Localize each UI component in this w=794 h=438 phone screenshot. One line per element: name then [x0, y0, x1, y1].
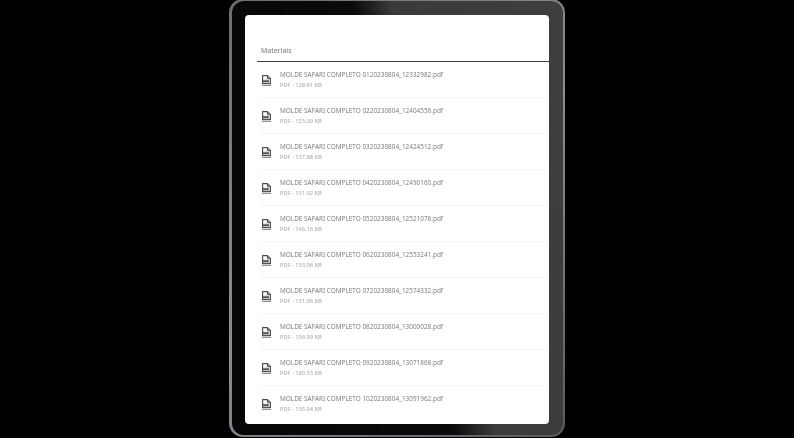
staticText: MOLDE SAFARI COMPLETO 0120230804_1233298… [280, 70, 444, 79]
staticText: MOLDE SAFARI COMPLETO 0920230804_1307186… [280, 358, 444, 367]
staticText: MOLDE SAFARI COMPLETO 0420230804_1249016… [280, 178, 444, 187]
staticText: PDF - 131.02 KB [280, 189, 322, 197]
other: PDF document [262, 363, 271, 374]
staticText: PDF - 125.30 KB [280, 117, 322, 125]
other: PDF document [262, 147, 271, 158]
other: PDF document [262, 183, 271, 194]
staticText: MOLDE SAFARI COMPLETO 0520230804_1252107… [280, 214, 444, 223]
other: PDF document [262, 327, 271, 338]
staticText: MOLDE SAFARI COMPLETO 1020230804_1309196… [280, 394, 444, 403]
button[interactable]: PDF document [245, 170, 549, 206]
staticText: MOLDE SAFARI COMPLETO 0220230804_1240455… [280, 106, 444, 115]
staticText: PDF - 146.16 KB [280, 225, 322, 233]
staticText: MOLDE SAFARI COMPLETO 0720230804_1257433… [280, 286, 444, 295]
staticText: MOLDE SAFARI COMPLETO 0820230804_1300002… [280, 322, 444, 331]
button[interactable]: Materiais [257, 44, 549, 62]
other: PDF document [262, 111, 271, 122]
button[interactable]: PDF document [245, 386, 549, 422]
button[interactable]: PDF document [245, 62, 549, 98]
staticText: PDF - 137.88 KB [280, 153, 322, 161]
button[interactable]: PDF document [245, 314, 549, 350]
staticText: PDF - 180.53 KB [280, 369, 322, 377]
button[interactable]: PDF document [245, 134, 549, 170]
other: PDF document [262, 399, 271, 410]
staticText: PDF - 131.06 KB [280, 297, 322, 305]
button[interactable]: PDF document [245, 98, 549, 134]
other: PDF document [262, 75, 271, 86]
staticText: Materiais [261, 46, 292, 56]
other: PDF document [262, 291, 271, 302]
button[interactable]: PDF document [245, 278, 549, 314]
other: PDF document [262, 255, 271, 266]
staticText: MOLDE SAFARI COMPLETO 0320230804_1242451… [280, 142, 444, 151]
staticText: PDF - 133.06 KB [280, 261, 322, 269]
staticText: PDF - 128.91 KB [280, 81, 322, 89]
other: PDF document [262, 219, 271, 230]
staticText: MOLDE SAFARI COMPLETO 0620230804_1255324… [280, 250, 444, 259]
staticText: PDF - 134.59 KB [280, 333, 322, 341]
button[interactable]: PDF document [245, 206, 549, 242]
staticText: PDF - 135.04 KB [280, 405, 322, 413]
button[interactable]: PDF document [245, 242, 549, 278]
button[interactable]: PDF document [245, 350, 549, 386]
